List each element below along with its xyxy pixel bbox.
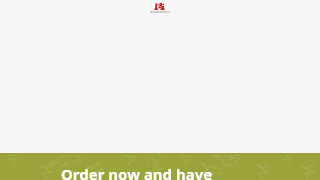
- button[interactable]: Order now and have: [0, 153, 320, 180]
- button[interactable]: Home: [147, 2, 173, 15]
- staticText: Order now and have: [61, 164, 261, 180]
